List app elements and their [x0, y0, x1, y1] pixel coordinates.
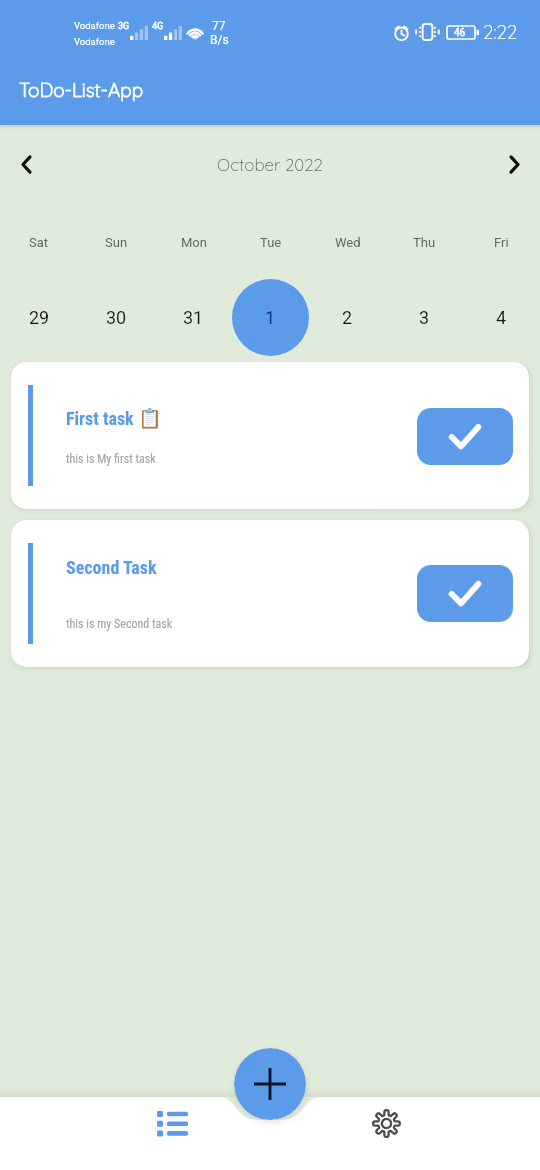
button[interactable]: Previous month	[4, 142, 48, 186]
button[interactable]: Settings	[270, 1097, 540, 1170]
staticText: Fri	[494, 235, 509, 250]
staticText: ToDo-List-App	[19, 78, 144, 102]
button[interactable]: Add task	[234, 1048, 306, 1120]
staticText: 29	[29, 307, 50, 328]
staticText: this is my Second task	[66, 617, 173, 631]
button[interactable]: Mark task complete	[417, 565, 513, 622]
staticText: 77	[212, 19, 226, 33]
staticText: 📋	[138, 407, 162, 429]
button[interactable]: First task	[11, 362, 529, 509]
staticText: Mon	[181, 235, 207, 250]
staticText: 4G	[152, 21, 164, 32]
staticText: Thu	[413, 235, 436, 250]
button[interactable]: Next month	[492, 142, 536, 186]
staticText: B/s	[210, 33, 229, 47]
staticText: 1	[265, 307, 276, 328]
button[interactable]: Mark task complete	[417, 408, 513, 465]
button[interactable]: 2	[309, 261, 386, 362]
staticText: Sat	[29, 235, 49, 250]
button[interactable]: 31	[155, 261, 232, 362]
staticText: 46	[454, 27, 466, 39]
button[interactable]: Tasks	[0, 1097, 270, 1170]
staticText: October 2022	[217, 154, 323, 175]
button[interactable]: Second Task	[11, 520, 529, 667]
staticText: 4	[496, 307, 507, 328]
staticText: 3G	[118, 21, 130, 32]
staticText: this is My first task	[66, 452, 156, 466]
staticText: 31	[183, 307, 204, 328]
staticText: 3	[419, 307, 430, 328]
button[interactable]: 1	[232, 261, 309, 362]
staticText: Sun	[105, 235, 128, 250]
staticText: Wed	[335, 235, 361, 250]
staticText: 30	[106, 307, 127, 328]
button[interactable]: 30	[78, 261, 155, 362]
staticText: 2	[342, 307, 353, 328]
staticText: First task	[66, 408, 134, 429]
button[interactable]: 4	[463, 261, 540, 362]
staticText: Vodafone	[74, 20, 115, 31]
staticText: Second Task	[66, 557, 157, 578]
button[interactable]: 3	[386, 261, 463, 362]
staticText: Vodafone	[74, 36, 115, 47]
staticText: 2:22	[483, 20, 518, 44]
staticText: Tue	[260, 235, 282, 250]
button[interactable]: 29	[0, 261, 78, 362]
